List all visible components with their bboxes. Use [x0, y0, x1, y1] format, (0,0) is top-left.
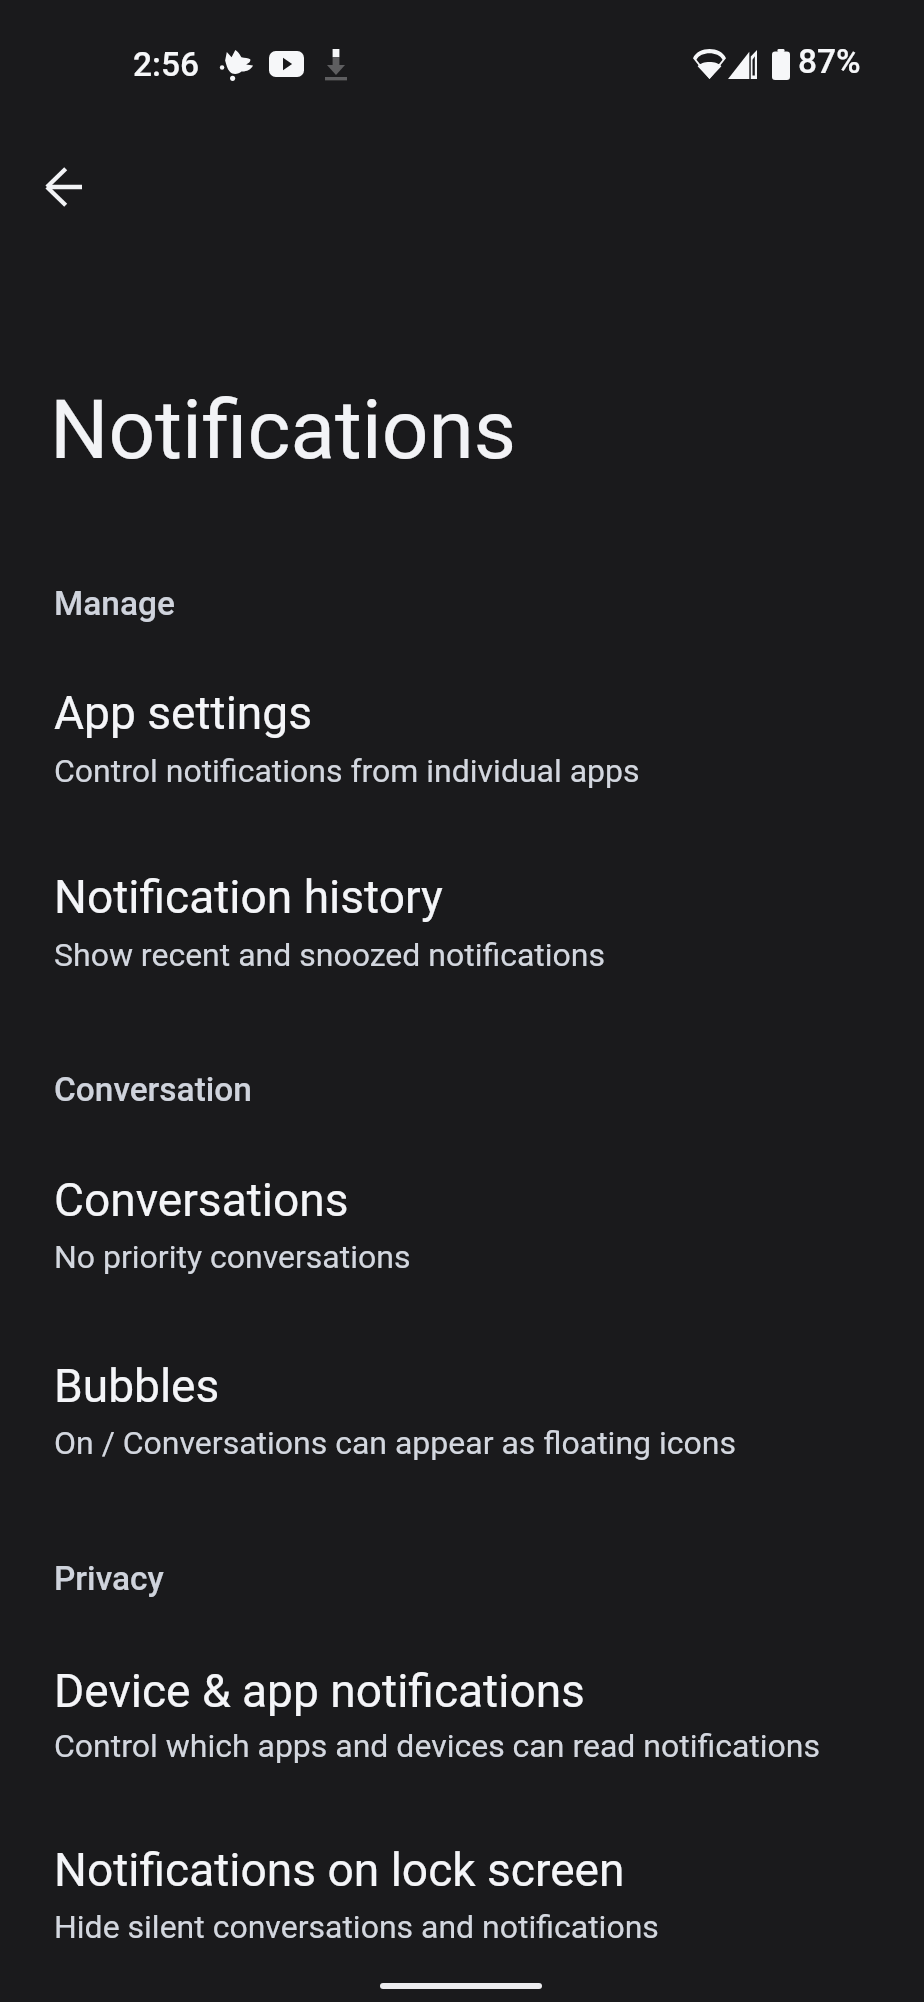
staticText: Conversations: [54, 1173, 349, 1227]
staticText: Control notifications from individual ap…: [54, 752, 640, 790]
staticText: Conversation: [54, 1070, 252, 1109]
staticText: Device & app notifications: [54, 1664, 585, 1718]
staticText: Bubbles: [54, 1359, 220, 1413]
staticText: Notifications on lock screen: [54, 1843, 625, 1897]
staticText: 2:56: [133, 45, 200, 84]
button[interactable]: Notification history: [0, 848, 924, 978]
staticText: On / Conversations can appear as floatin…: [54, 1424, 736, 1462]
staticText: Notifications: [50, 382, 517, 478]
staticText: App settings: [54, 686, 312, 740]
staticText: Privacy: [54, 1559, 164, 1598]
button[interactable]: Conversations: [0, 1151, 924, 1280]
button[interactable]: Navigate up: [25, 149, 101, 225]
button[interactable]: App settings: [0, 664, 924, 794]
staticText: Hide silent conversations and notificati…: [54, 1908, 659, 1946]
button[interactable]: Notifications on lock screen: [0, 1821, 924, 1950]
staticText: Notification history: [54, 870, 443, 924]
staticText: 87%: [798, 42, 861, 81]
button[interactable]: Bubbles: [0, 1337, 924, 1466]
staticText: Control which apps and devices can read …: [54, 1727, 821, 1765]
staticText: No priority conversations: [54, 1238, 411, 1276]
staticText: Show recent and snoozed notifications: [54, 936, 605, 974]
staticText: Manage: [54, 584, 175, 623]
button[interactable]: Device & app notifications: [0, 1642, 924, 1769]
